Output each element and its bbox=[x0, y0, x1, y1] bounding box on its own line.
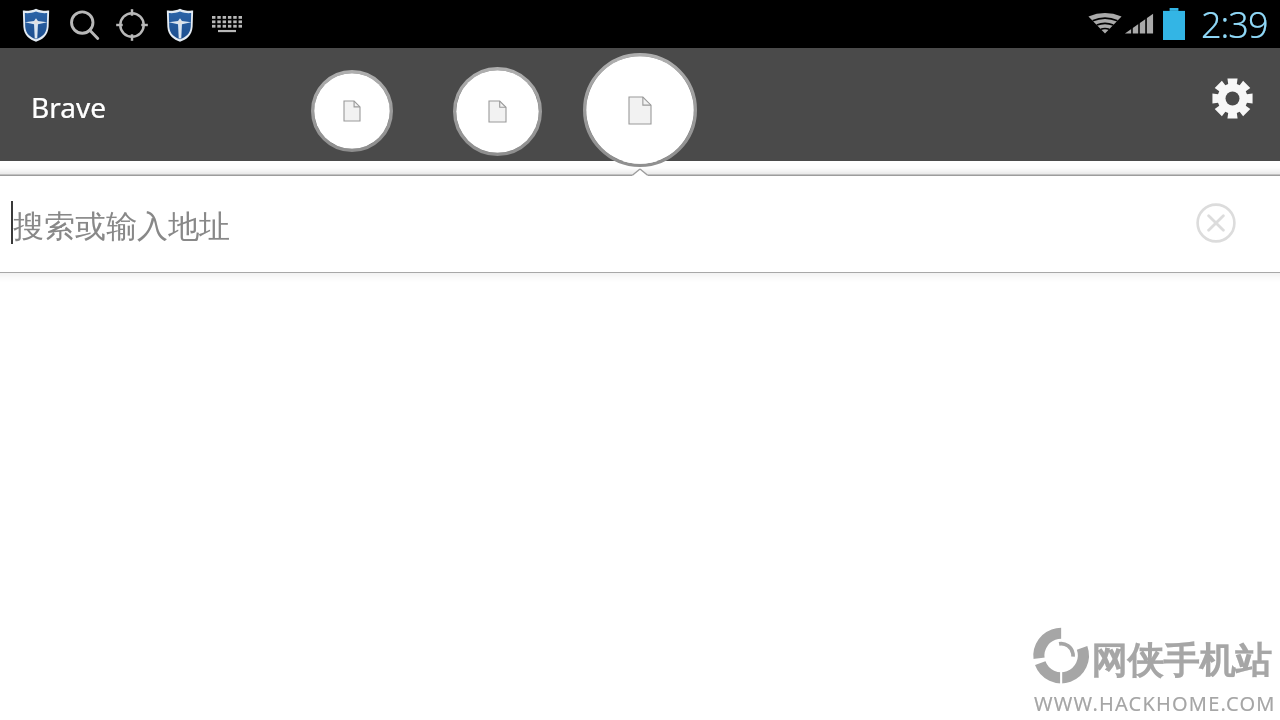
button[interactable]: Clear text bbox=[1192, 199, 1240, 247]
button[interactable]: Tab bbox=[583, 53, 697, 167]
staticText: 搜索或输入地址 bbox=[13, 207, 230, 246]
staticText: 网侠手机站 bbox=[1091, 638, 1271, 683]
button[interactable]: Tab bbox=[311, 70, 393, 152]
staticText: 2:39 bbox=[1201, 0, 1268, 48]
staticText: Brave bbox=[31, 88, 106, 126]
button[interactable]: Tab bbox=[453, 67, 542, 156]
button[interactable]: 搜索或输入地址 bbox=[0, 175, 1280, 271]
button[interactable]: Settings bbox=[1207, 73, 1257, 123]
staticText: WWW.HACKHOME.COM bbox=[1034, 690, 1276, 717]
button[interactable]: Brave bbox=[20, 74, 120, 140]
